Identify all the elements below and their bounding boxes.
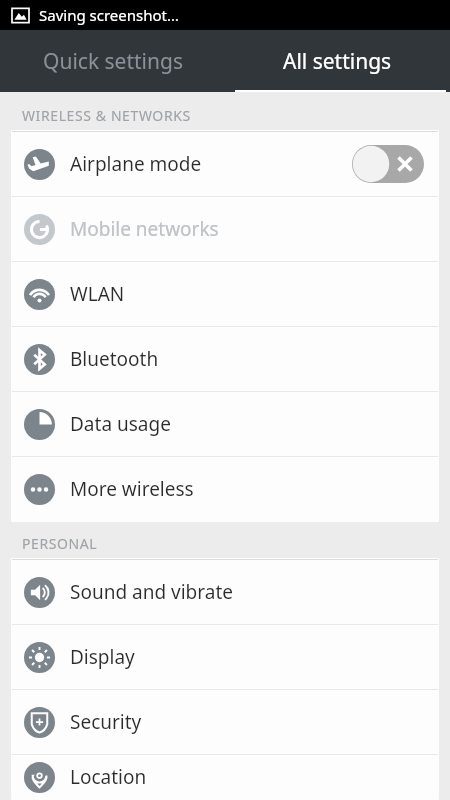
button[interactable]: Display <box>12 625 438 689</box>
staticText: PERSONAL <box>22 534 98 553</box>
staticText: Mobile networks <box>70 216 219 242</box>
staticText: Bluetooth <box>70 346 159 372</box>
staticText: Display <box>70 644 135 670</box>
button[interactable]: Location <box>12 755 438 799</box>
staticText: More wireless <box>70 476 194 502</box>
staticText: Sound and vibrate <box>70 579 234 605</box>
button[interactable]: Bluetooth <box>12 327 438 391</box>
staticText: Data usage <box>70 411 171 437</box>
button[interactable]: Sound and vibrate <box>12 560 438 624</box>
button[interactable]: Data usage <box>12 392 438 456</box>
staticText: Airplane mode <box>70 151 202 177</box>
button[interactable]: More wireless <box>12 457 438 521</box>
button[interactable]: Airplane mode <box>12 132 438 196</box>
staticText: WIRELESS & NETWORKS <box>22 106 191 125</box>
staticText: All settings <box>283 47 392 76</box>
staticText: Security <box>70 709 142 735</box>
button[interactable]: Security <box>12 690 438 754</box>
button[interactable]: Quick settings <box>0 30 225 92</box>
staticText: Quick settings <box>43 47 183 76</box>
button[interactable]: All settings <box>225 30 450 92</box>
staticText: Location <box>70 764 147 790</box>
button[interactable]: Mobile networks <box>12 197 438 261</box>
staticText: WLAN <box>70 281 125 307</box>
button[interactable]: WLAN <box>12 262 438 326</box>
button[interactable]: Airplane mode toggle, off <box>352 145 424 183</box>
staticText: Saving screenshot… <box>39 5 179 25</box>
